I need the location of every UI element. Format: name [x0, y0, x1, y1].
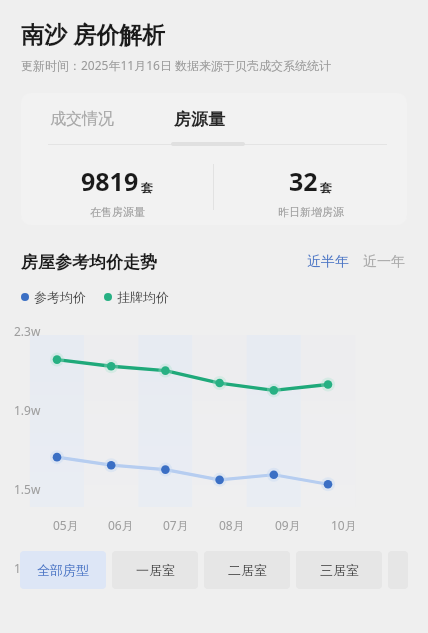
button[interactable]: 一居室 [112, 551, 198, 589]
button[interactable]: 32 [214, 164, 407, 219]
staticText: 套 [320, 180, 332, 195]
button[interactable]: 二居室 [204, 551, 290, 589]
button[interactable]: 全部房型 [20, 551, 106, 589]
staticText: 近一年 [363, 253, 405, 271]
staticText: 更新时间：2025年11月16日 数据来源于贝壳成交系统统计 [21, 57, 332, 73]
staticText: 32 [289, 164, 318, 198]
staticText: 08月 [219, 517, 245, 533]
staticText: 三居室 [320, 562, 359, 578]
button[interactable]: 9819 [21, 164, 213, 219]
button[interactable]: 房源量 [172, 105, 227, 134]
staticText: 07月 [163, 517, 189, 533]
staticText: 南沙 房价解析 [21, 18, 165, 49]
staticText: 10月 [331, 517, 357, 533]
staticText: 参考均价 [34, 289, 86, 305]
staticText: 一居室 [136, 562, 175, 578]
staticText: 06月 [108, 517, 134, 533]
staticText: 全部房型 [37, 562, 89, 578]
staticText: 2.3w [14, 323, 41, 339]
staticText: 成交情况 [50, 109, 114, 129]
staticText: 昨日新增房源 [278, 205, 344, 219]
staticText: 房屋参考均价走势 [21, 252, 157, 273]
button[interactable]: 近半年 [304, 249, 352, 275]
staticText: 05月 [53, 517, 79, 533]
staticText: 1.9w [14, 402, 41, 418]
staticText: 二居室 [228, 562, 267, 578]
staticText: 近半年 [307, 253, 349, 271]
staticText: 在售房源量 [90, 205, 145, 219]
staticText: 09月 [275, 517, 301, 533]
staticText: 1.5w [14, 481, 41, 497]
button[interactable]: 三居室 [296, 551, 382, 589]
button[interactable]: 近一年 [360, 249, 408, 275]
staticText: 套 [141, 180, 153, 195]
staticText: 房源量 [174, 109, 225, 130]
button[interactable]: 成交情况 [48, 105, 116, 133]
staticText: 9819 [81, 164, 139, 198]
staticText: 挂牌均价 [117, 289, 169, 305]
staticText: 1.1w [14, 560, 41, 576]
